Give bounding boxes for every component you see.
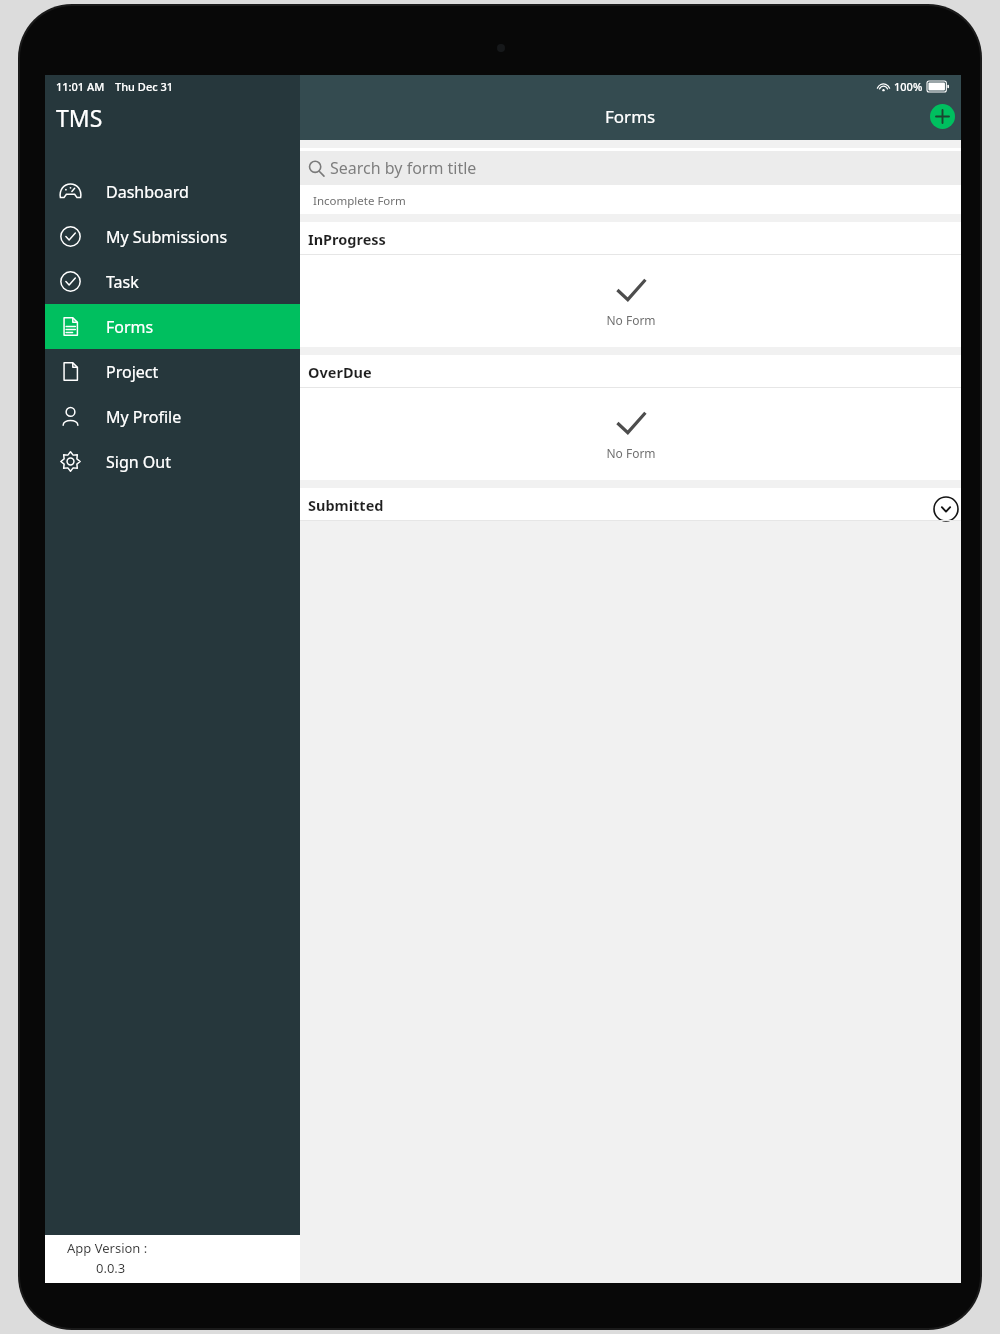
other: Expand Submitted <box>933 496 959 522</box>
button[interactable]: My Submissions <box>45 214 300 259</box>
staticText: Forms <box>106 316 154 338</box>
staticText: Sign Out <box>106 451 171 473</box>
staticText: Incomplete Form <box>313 193 406 209</box>
staticText: My Profile <box>106 406 182 428</box>
button[interactable]: OverDue <box>300 355 961 388</box>
staticText: No Form <box>606 312 656 328</box>
staticText: Task <box>106 271 139 293</box>
staticText: No Form <box>606 445 656 461</box>
staticText: 100% <box>894 79 923 94</box>
staticText: 11:01 AM <box>56 79 105 94</box>
staticText: Submitted <box>308 495 384 515</box>
staticText: My Submissions <box>106 226 228 248</box>
button[interactable]: Submitted <box>300 488 961 521</box>
button[interactable]: Dashboard <box>45 169 300 214</box>
button[interactable]: Forms <box>45 304 300 349</box>
staticText: InProgress <box>308 229 386 249</box>
button[interactable]: InProgress <box>300 222 961 255</box>
staticText: Project <box>106 361 159 383</box>
staticText: 0.0.3 <box>96 1259 126 1277</box>
button[interactable]: My Profile <box>45 394 300 439</box>
staticText: Forms <box>605 105 656 128</box>
button[interactable]: Task <box>45 259 300 304</box>
button[interactable]: Incomplete Form <box>300 188 961 214</box>
button[interactable]: Search by form title <box>300 151 961 185</box>
button[interactable]: Project <box>45 349 300 394</box>
staticText: Thu Dec 31 <box>115 79 174 94</box>
staticText: OverDue <box>308 362 372 382</box>
button[interactable]: Add form <box>930 104 955 129</box>
staticText: App Version : <box>67 1239 148 1257</box>
staticText: TMS <box>56 102 103 133</box>
staticText: Dashboard <box>106 181 189 203</box>
staticText: Search by form title <box>330 157 477 179</box>
button[interactable]: Sign Out <box>45 439 300 484</box>
